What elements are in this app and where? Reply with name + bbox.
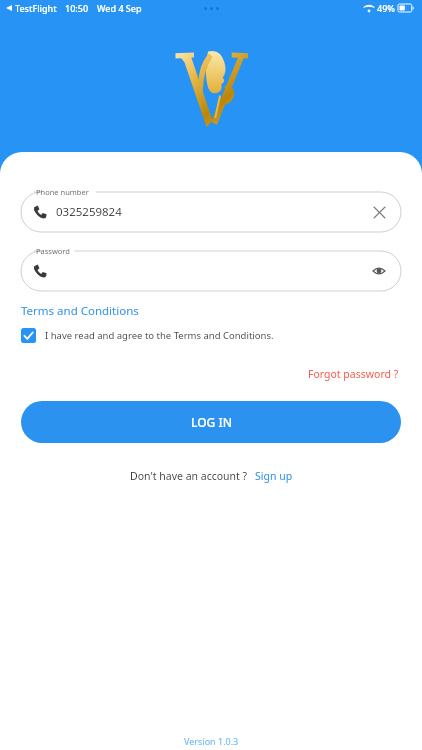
staticText: Wed 4 Sep — [97, 2, 142, 14]
button[interactable]: Forgot password ? — [306, 365, 401, 383]
staticText: 49% — [377, 2, 395, 14]
staticText: Sign up — [255, 469, 293, 483]
button[interactable]: Clear phone number — [369, 202, 389, 222]
staticText: Terms and Conditions — [21, 303, 139, 319]
staticText: 0325259824 — [56, 204, 122, 220]
staticText: Forgot password ? — [308, 367, 399, 381]
staticText: I have read and agree to the Terms and C… — [45, 329, 274, 342]
button[interactable]: Terms and Conditions — [21, 303, 139, 319]
staticText: Password — [36, 246, 70, 256]
staticText: 10:50 — [65, 2, 89, 14]
button[interactable]: Show password — [369, 261, 389, 281]
staticText: LOG IN — [191, 414, 232, 430]
staticText: Version 1.0.3 — [184, 735, 239, 747]
button[interactable]: I have read and agree to the Terms and C… — [21, 328, 401, 343]
button[interactable]: LOG IN — [21, 401, 401, 443]
button[interactable]: Phone number — [21, 185, 401, 232]
staticText: Phone number — [36, 187, 89, 197]
button[interactable]: Sign up — [255, 469, 293, 483]
staticText: Don't have an account ? — [130, 469, 248, 483]
staticText: TestFlight — [15, 2, 57, 14]
button[interactable]: Password — [21, 244, 401, 291]
